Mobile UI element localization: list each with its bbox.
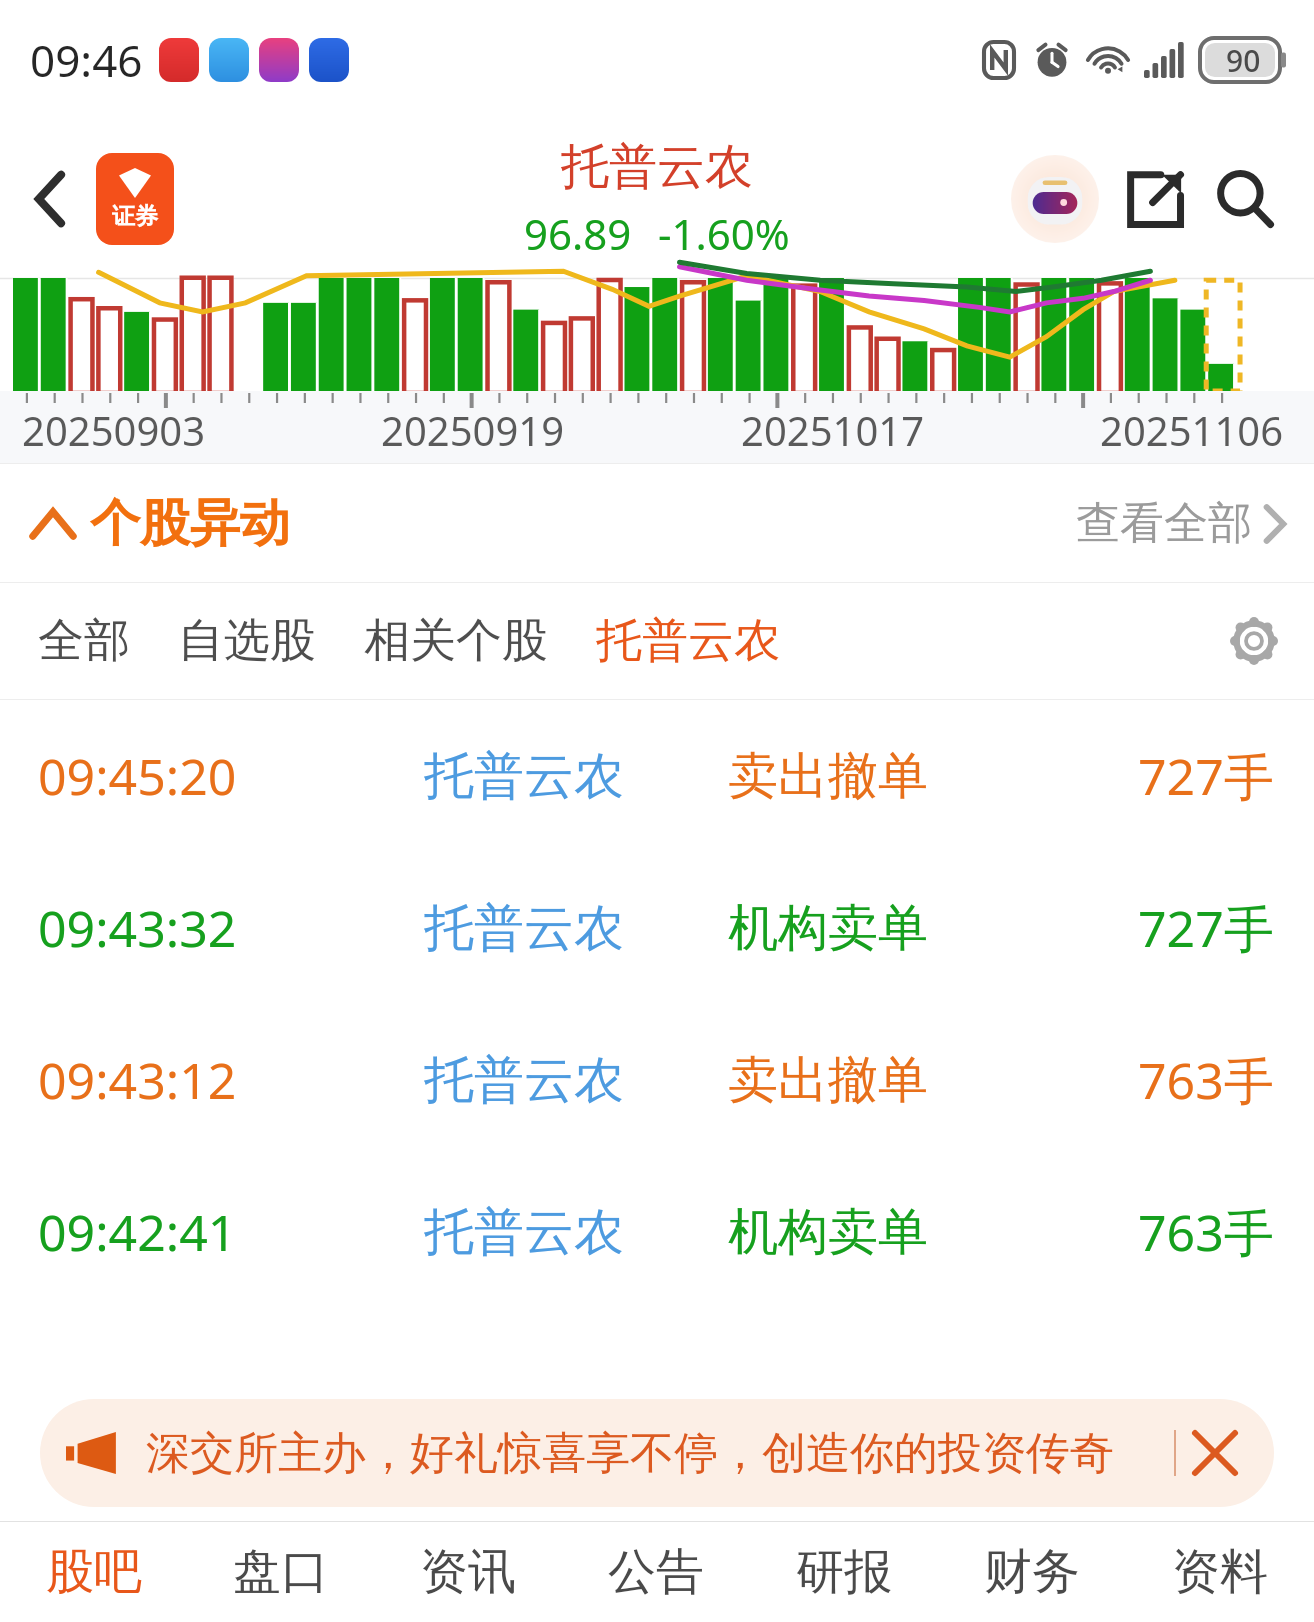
staticText: 托普云农 — [424, 897, 624, 960]
staticText: 个股异动 — [90, 492, 290, 555]
staticText: 20250919 — [381, 403, 565, 457]
button[interactable]: 全部 — [34, 604, 134, 678]
staticText: 托普云农 — [424, 1049, 624, 1112]
button[interactable]: Share — [1112, 156, 1198, 242]
staticText: 09:43:32 — [38, 894, 237, 962]
staticText: 卖出撤单 — [728, 1049, 928, 1112]
button[interactable]: Search — [1202, 156, 1288, 242]
button[interactable]: Securities — [96, 153, 174, 245]
staticText: 托普云农 — [596, 612, 780, 670]
button[interactable]: 研报 — [750, 1522, 938, 1622]
staticText: 20251106 — [1100, 403, 1284, 457]
staticText: 托普云农 — [424, 1201, 624, 1264]
staticText: 资讯 — [420, 1542, 516, 1602]
staticText: 09:42:41 — [38, 1198, 237, 1266]
staticText: 全部 — [38, 612, 130, 670]
staticText: 盘口 — [233, 1542, 329, 1602]
button[interactable]: Back — [14, 162, 88, 236]
staticText: 727手 — [1138, 742, 1274, 810]
staticText: 机构卖单 — [728, 1201, 928, 1264]
staticText: 股吧 — [46, 1542, 142, 1602]
staticText: 研报 — [796, 1542, 892, 1602]
button[interactable]: 资讯 — [374, 1522, 562, 1622]
button[interactable]: 自选股 — [174, 604, 320, 678]
staticText: 证券 — [112, 202, 158, 231]
staticText: 查看全部 — [1076, 496, 1252, 551]
staticText: 深交所主办，好礼惊喜享不停，创造你的投资传奇 — [146, 1426, 1174, 1481]
staticText: 机构卖单 — [728, 897, 928, 960]
button[interactable]: 盘口 — [187, 1522, 374, 1622]
staticText: 763手 — [1138, 1046, 1274, 1114]
staticText: 托普云农 — [424, 745, 624, 808]
staticText: 20251017 — [741, 403, 925, 457]
staticText: 自选股 — [178, 612, 316, 670]
staticText: 托普云农 — [561, 137, 753, 197]
staticText: 公告 — [608, 1542, 704, 1602]
staticText: 09:45:20 — [38, 742, 237, 810]
staticText: 96.89 — [524, 205, 632, 262]
button[interactable]: 查看全部 — [1076, 496, 1288, 551]
staticText: 727手 — [1138, 894, 1274, 962]
button[interactable]: 资料 — [1126, 1522, 1314, 1622]
staticText: -1.60% — [658, 205, 790, 262]
button[interactable]: 09:43:32 — [0, 852, 1314, 1004]
button[interactable]: 股吧 — [0, 1522, 187, 1622]
staticText: 90 — [1226, 40, 1261, 81]
staticText: 资料 — [1172, 1542, 1268, 1602]
staticText: 763手 — [1138, 1198, 1274, 1266]
button[interactable]: 个股异动 — [30, 492, 290, 555]
staticText: 卖出撤单 — [728, 745, 928, 808]
staticText: 财务 — [984, 1542, 1080, 1602]
staticText: 09:43:12 — [38, 1046, 237, 1114]
staticText: 20250903 — [22, 403, 206, 457]
button[interactable]: AI assistant — [1008, 152, 1102, 246]
button[interactable]: 09:42:41 — [0, 1156, 1314, 1308]
button[interactable]: 相关个股 — [360, 604, 552, 678]
staticText: 相关个股 — [364, 612, 548, 670]
button[interactable]: 托普云农 — [592, 604, 784, 678]
button[interactable]: Close banner — [1176, 1399, 1254, 1507]
button[interactable]: 09:43:12 — [0, 1004, 1314, 1156]
button[interactable]: 深交所主办，好礼惊喜享不停，创造你的投资传奇 — [40, 1399, 1274, 1507]
button[interactable]: 09:45:20 — [0, 700, 1314, 852]
button[interactable]: 公告 — [562, 1522, 750, 1622]
button[interactable]: Settings — [1218, 605, 1290, 677]
button[interactable]: 财务 — [938, 1522, 1126, 1622]
staticText: 09:46 — [30, 30, 143, 90]
